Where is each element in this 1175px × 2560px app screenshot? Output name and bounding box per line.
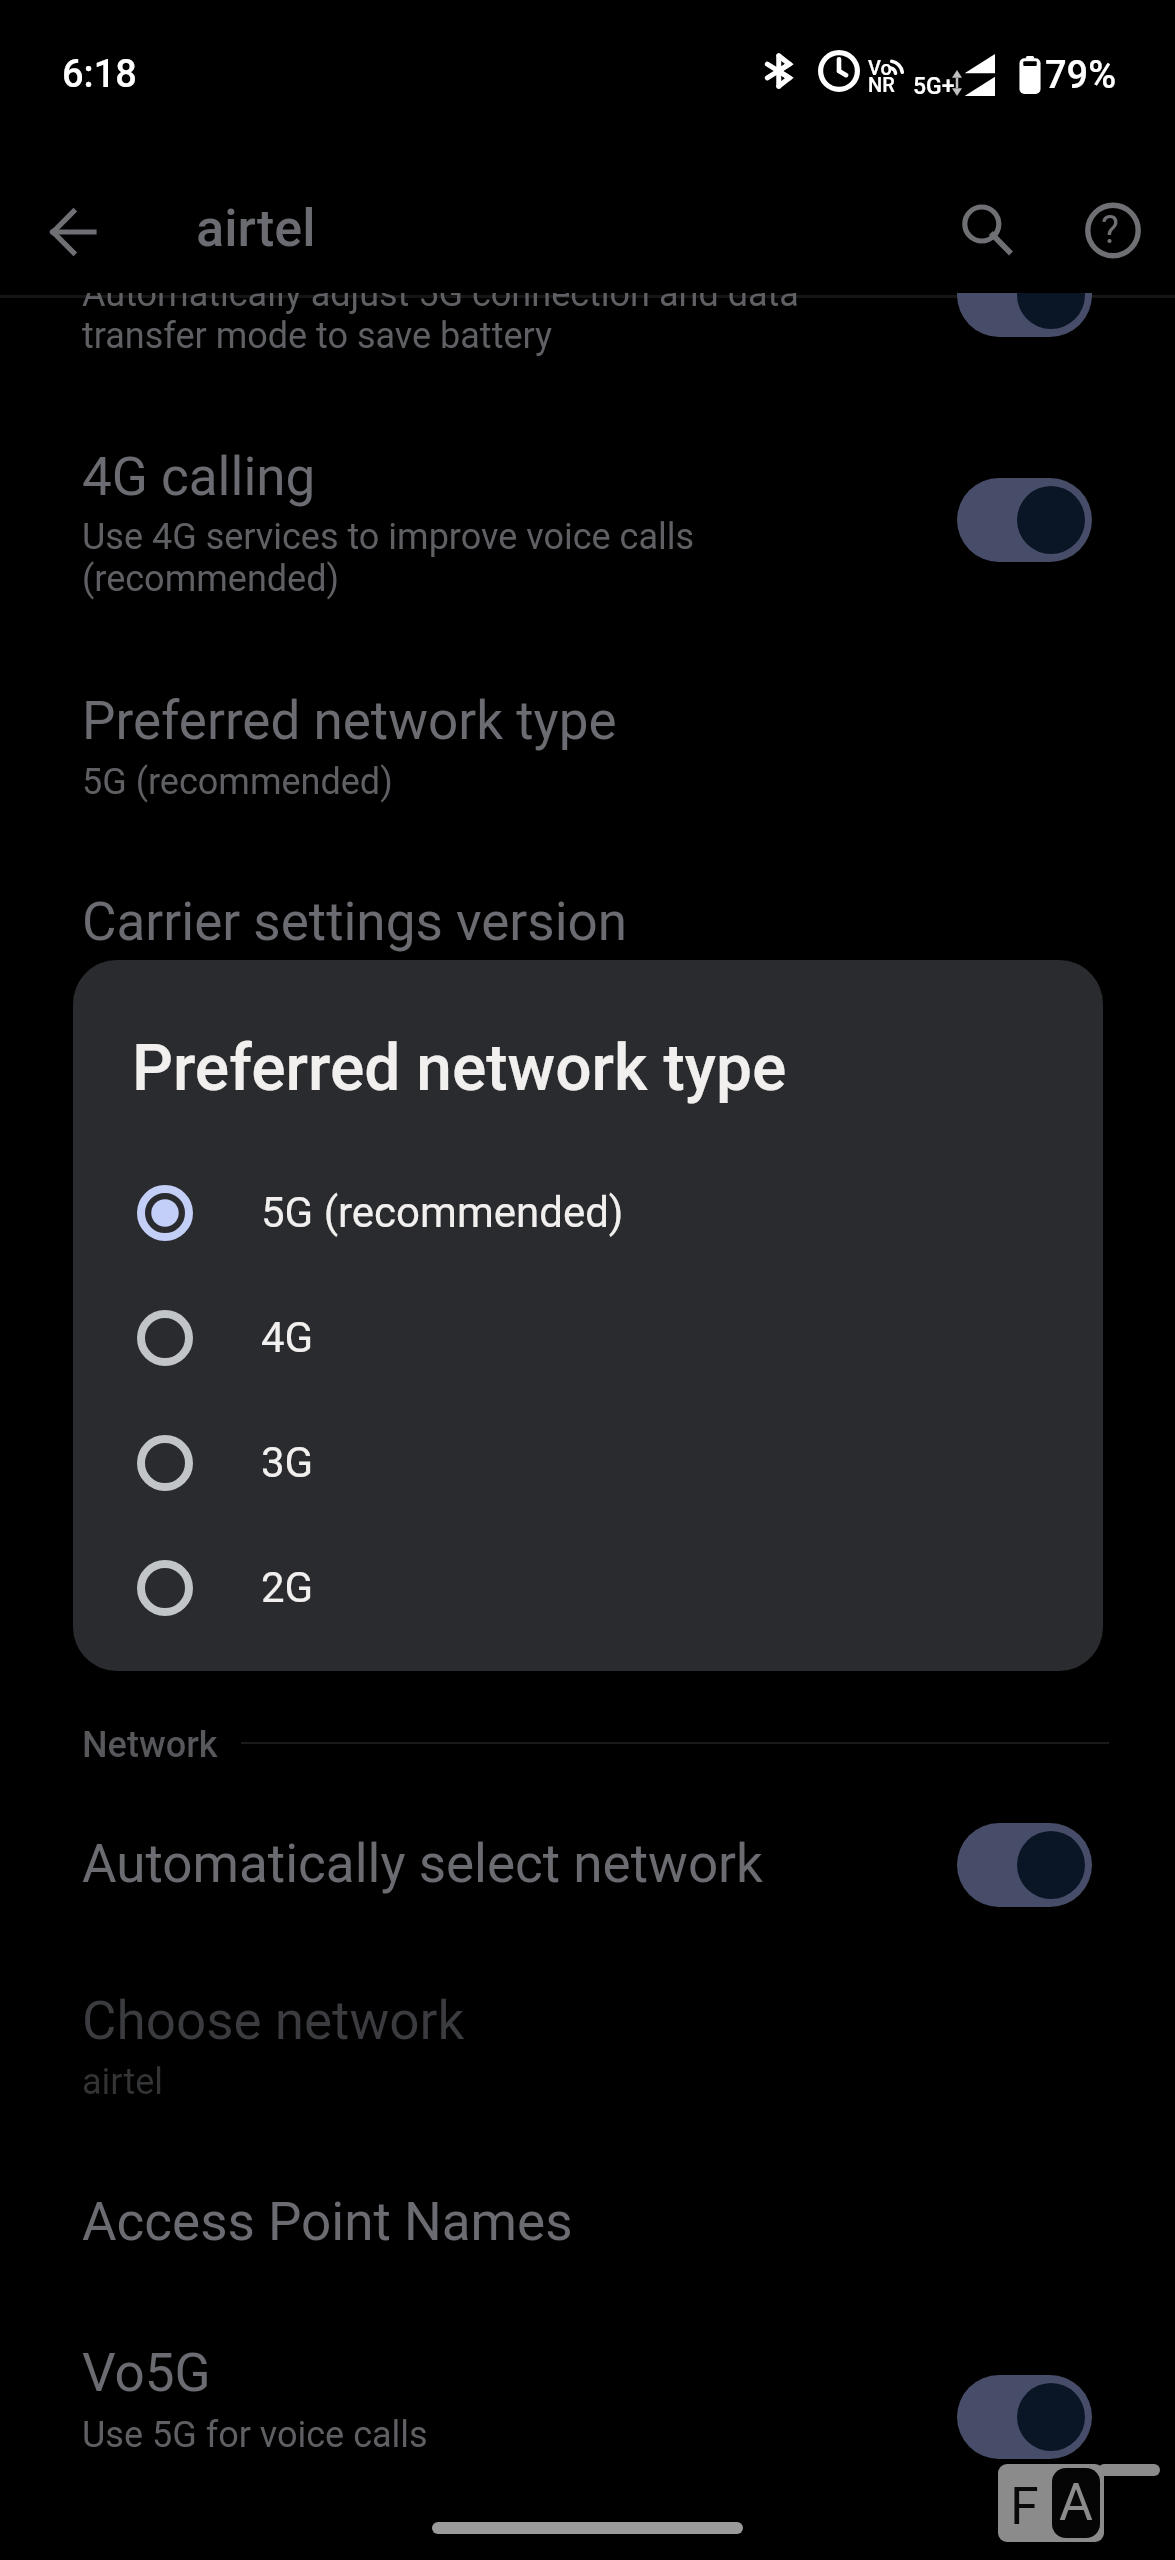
button[interactable]: Search [943,188,1031,276]
staticText: Carrier settings version [82,891,628,953]
button[interactable]: Access Point Names [0,2179,1175,2299]
staticText: 5G (recommended) [82,761,393,803]
staticText: Preferred network type [132,1031,787,1106]
staticText: 79% [1045,53,1117,98]
staticText: Preferred network type [82,690,617,752]
staticText: Access Point Names [82,2191,573,2253]
button[interactable]: 2G [73,1525,1103,1650]
button[interactable]: Choose network [0,1978,1175,2138]
button[interactable]: Carrier settings version [0,879,1175,1019]
button[interactable]: 4G calling [0,434,1175,634]
staticText: Automatically select network [82,1833,763,1895]
button[interactable]: Toggle switch [957,1823,1092,1907]
staticText: Network [82,1724,218,1766]
staticText: Use 5G for voice calls [82,2414,428,2456]
button[interactable]: Toggle switch [957,2375,1092,2459]
staticText: (recommended) [82,558,339,600]
staticText: Use 4G services to improve voice calls [82,516,695,558]
staticText: F [1010,2476,1039,2537]
staticText: 6:18 [62,52,137,97]
staticText: 2G [261,1563,314,1612]
button[interactable]: 5G (recommended) [73,1150,1103,1275]
staticText: 5G (recommended) [261,1188,624,1237]
staticText: 5G+ [913,73,955,100]
button[interactable]: 3G [73,1400,1103,1525]
button[interactable]: 4G [73,1275,1103,1400]
button[interactable]: Automatically select network [0,1821,1175,1931]
staticText: NR [868,73,895,96]
button[interactable]: Back [30,188,118,276]
staticText: Choose network [82,1990,465,2052]
staticText: Automatically adjust 5G connection and d… [82,293,799,315]
staticText: 3G [261,1438,314,1487]
staticText: 4G [261,1313,314,1362]
button[interactable]: Toggle switch [957,478,1092,562]
staticText: transfer mode to save battery [82,315,553,357]
staticText: airtel [82,2061,164,2103]
staticText: A [1059,2472,1093,2533]
button[interactable]: Vo5G [0,2330,1175,2490]
staticText: Vo5G [82,2342,211,2404]
staticText: 4G calling [82,446,316,508]
button[interactable]: Preferred network type [0,678,1175,838]
staticText: Vo [868,56,892,79]
staticText: ? [1101,208,1119,253]
staticText: airtel [196,198,316,259]
button[interactable]: Help [1068,188,1156,276]
